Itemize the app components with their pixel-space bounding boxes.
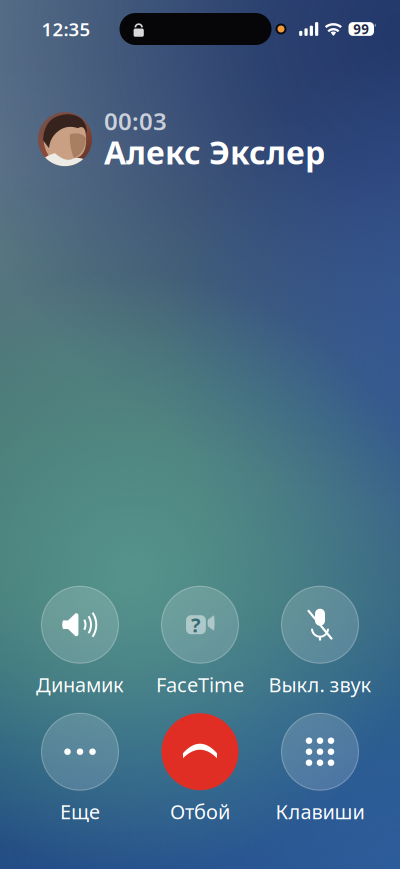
staticText: Выкл. звук — [268, 671, 371, 698]
staticText: Динамик — [36, 671, 124, 698]
staticText: FaceTime — [156, 671, 244, 698]
staticText: Отбой — [170, 798, 230, 825]
button[interactable]: Динамик — [20, 591, 140, 693]
staticText: Клавиши — [275, 798, 364, 825]
staticText: Еще — [60, 798, 100, 825]
button[interactable]: Отбой — [140, 718, 260, 820]
staticText: 00:03 — [104, 105, 167, 137]
staticText: 99 — [353, 20, 369, 38]
button[interactable]: Еще — [20, 718, 140, 820]
button[interactable]: ? — [140, 591, 260, 693]
button[interactable]: Выкл. звук — [260, 591, 380, 693]
staticText: Алекс Экслер — [104, 131, 325, 173]
staticText: 12:35 — [41, 17, 90, 41]
staticText: ? — [191, 611, 201, 638]
button[interactable]: Клавиши — [260, 718, 380, 820]
